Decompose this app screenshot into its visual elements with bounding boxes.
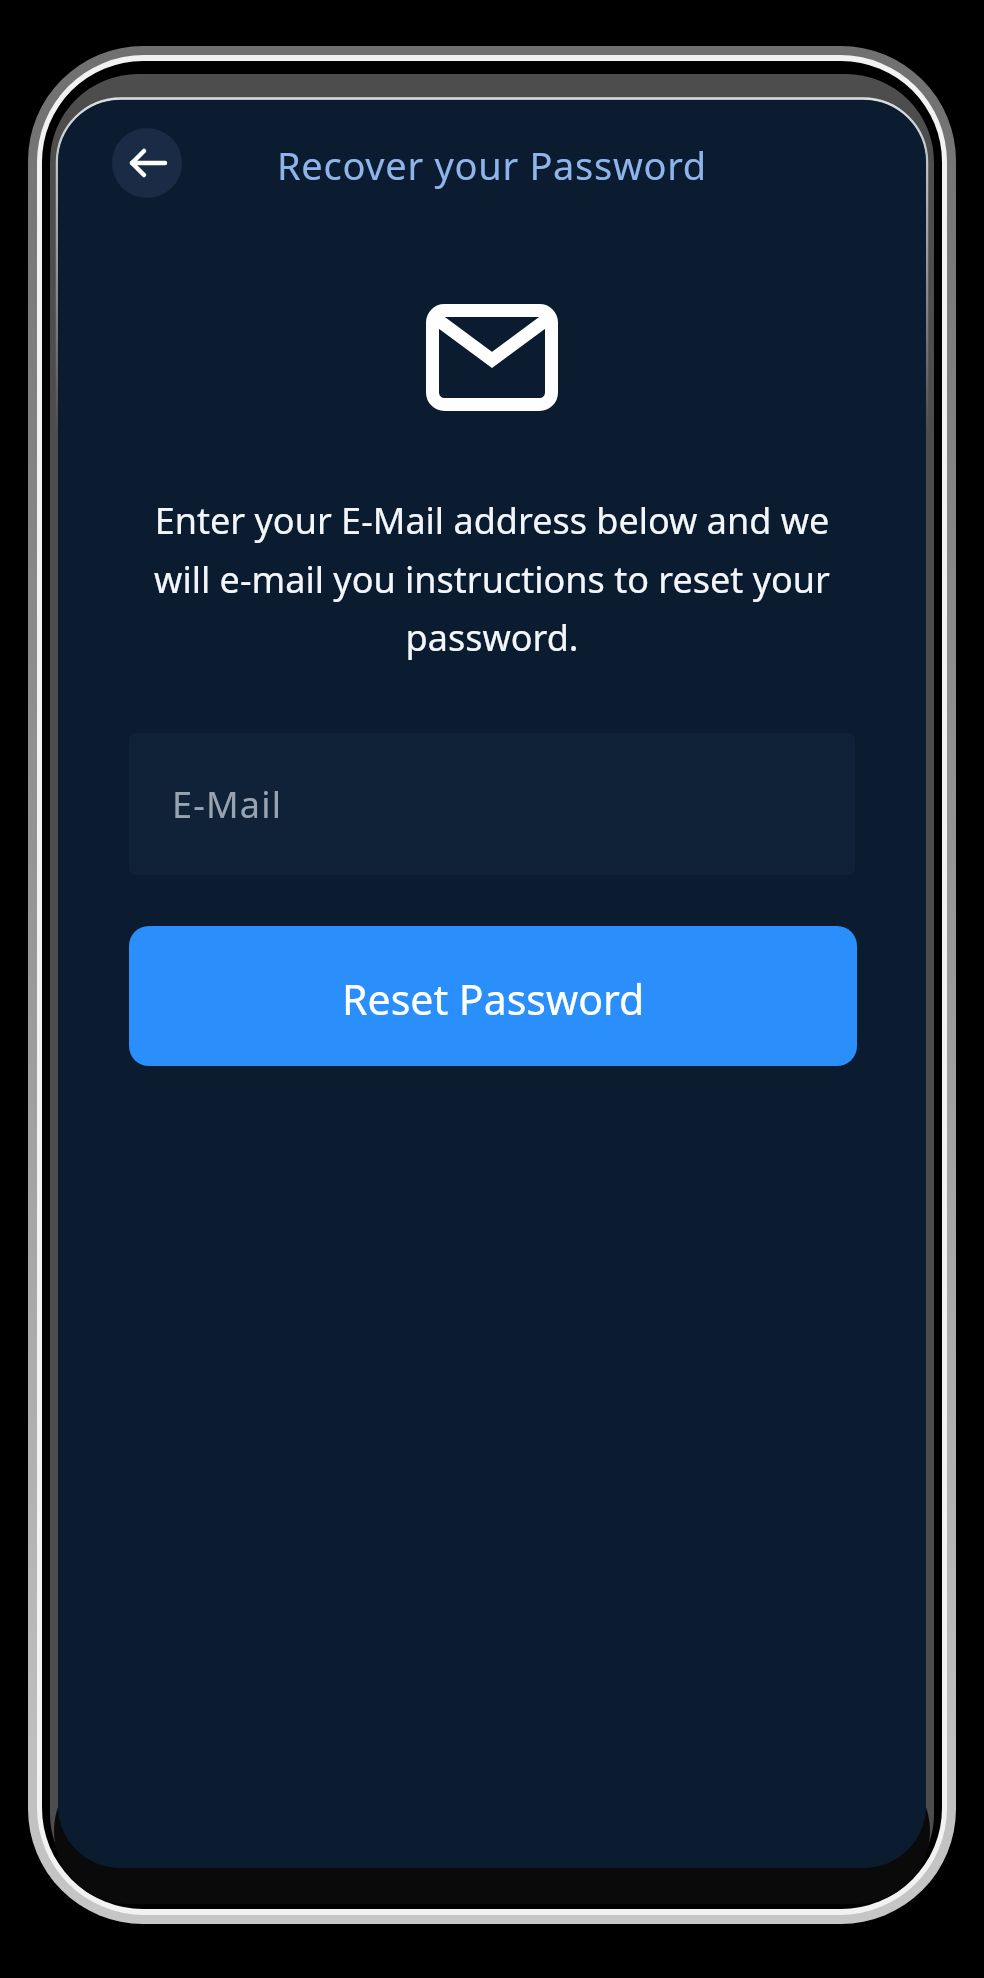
staticText: Reset Password — [342, 971, 645, 1027]
button[interactable] — [112, 128, 182, 198]
button[interactable]: Reset Password — [129, 926, 857, 1066]
staticText: Enter your E-Mail address below and we w… — [154, 496, 830, 661]
staticText: Recover your Password — [277, 139, 707, 191]
staticText: E-Mail — [172, 780, 283, 829]
button[interactable]: E-Mail — [129, 733, 855, 875]
